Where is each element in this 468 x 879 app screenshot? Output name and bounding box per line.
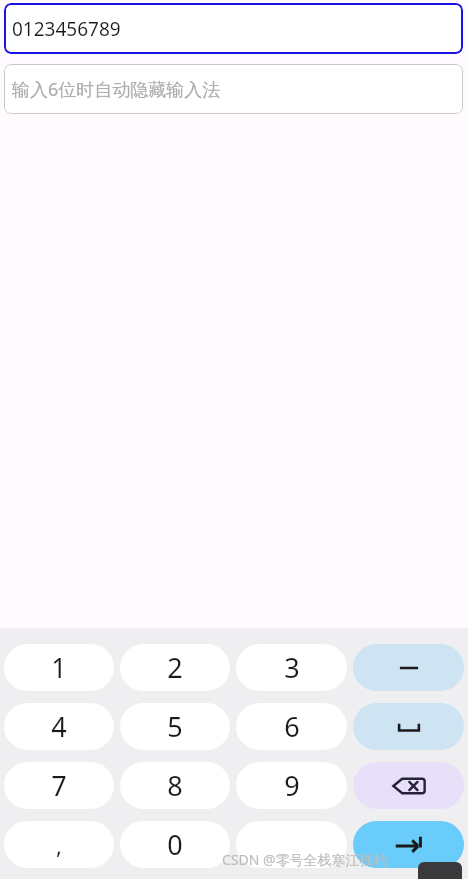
- staticText: 2: [167, 649, 183, 686]
- staticText: 8: [167, 767, 183, 804]
- button[interactable]: Minus: [353, 644, 464, 691]
- staticText: 3: [284, 649, 300, 686]
- button[interactable]: Space: [353, 703, 464, 750]
- button[interactable]: 6: [236, 703, 347, 750]
- button[interactable]: 5: [120, 703, 230, 750]
- button[interactable]: Backspace: [353, 762, 464, 809]
- button[interactable]: 4: [4, 703, 114, 750]
- button[interactable]: 9: [236, 762, 347, 809]
- staticText: 7: [51, 767, 67, 804]
- button[interactable]: 1: [4, 644, 114, 691]
- staticText: 9: [284, 767, 300, 804]
- staticText: 0: [167, 826, 183, 863]
- button[interactable]: Enter: [353, 821, 464, 868]
- staticText: 1: [51, 649, 67, 686]
- staticText: 4: [51, 708, 67, 745]
- button[interactable]: 0: [120, 821, 230, 868]
- button[interactable]: 8: [120, 762, 230, 809]
- button[interactable]: ,: [4, 821, 114, 868]
- staticText: CSDN @零号全栈寒江独钓: [222, 850, 388, 869]
- button[interactable]: Blank key: [236, 821, 347, 868]
- staticText: 6: [284, 708, 300, 745]
- button[interactable]: 3: [236, 644, 347, 691]
- staticText: 5: [167, 708, 183, 745]
- staticText: 输入6位时自动隐藏输入法: [12, 77, 221, 102]
- button[interactable]: 2: [120, 644, 230, 691]
- staticText: ,: [56, 830, 62, 860]
- staticText: 0123456789: [12, 16, 121, 42]
- button[interactable]: 7: [4, 762, 114, 809]
- button[interactable]: 输入6位时自动隐藏输入法: [4, 64, 463, 114]
- button[interactable]: 0123456789: [4, 3, 463, 54]
